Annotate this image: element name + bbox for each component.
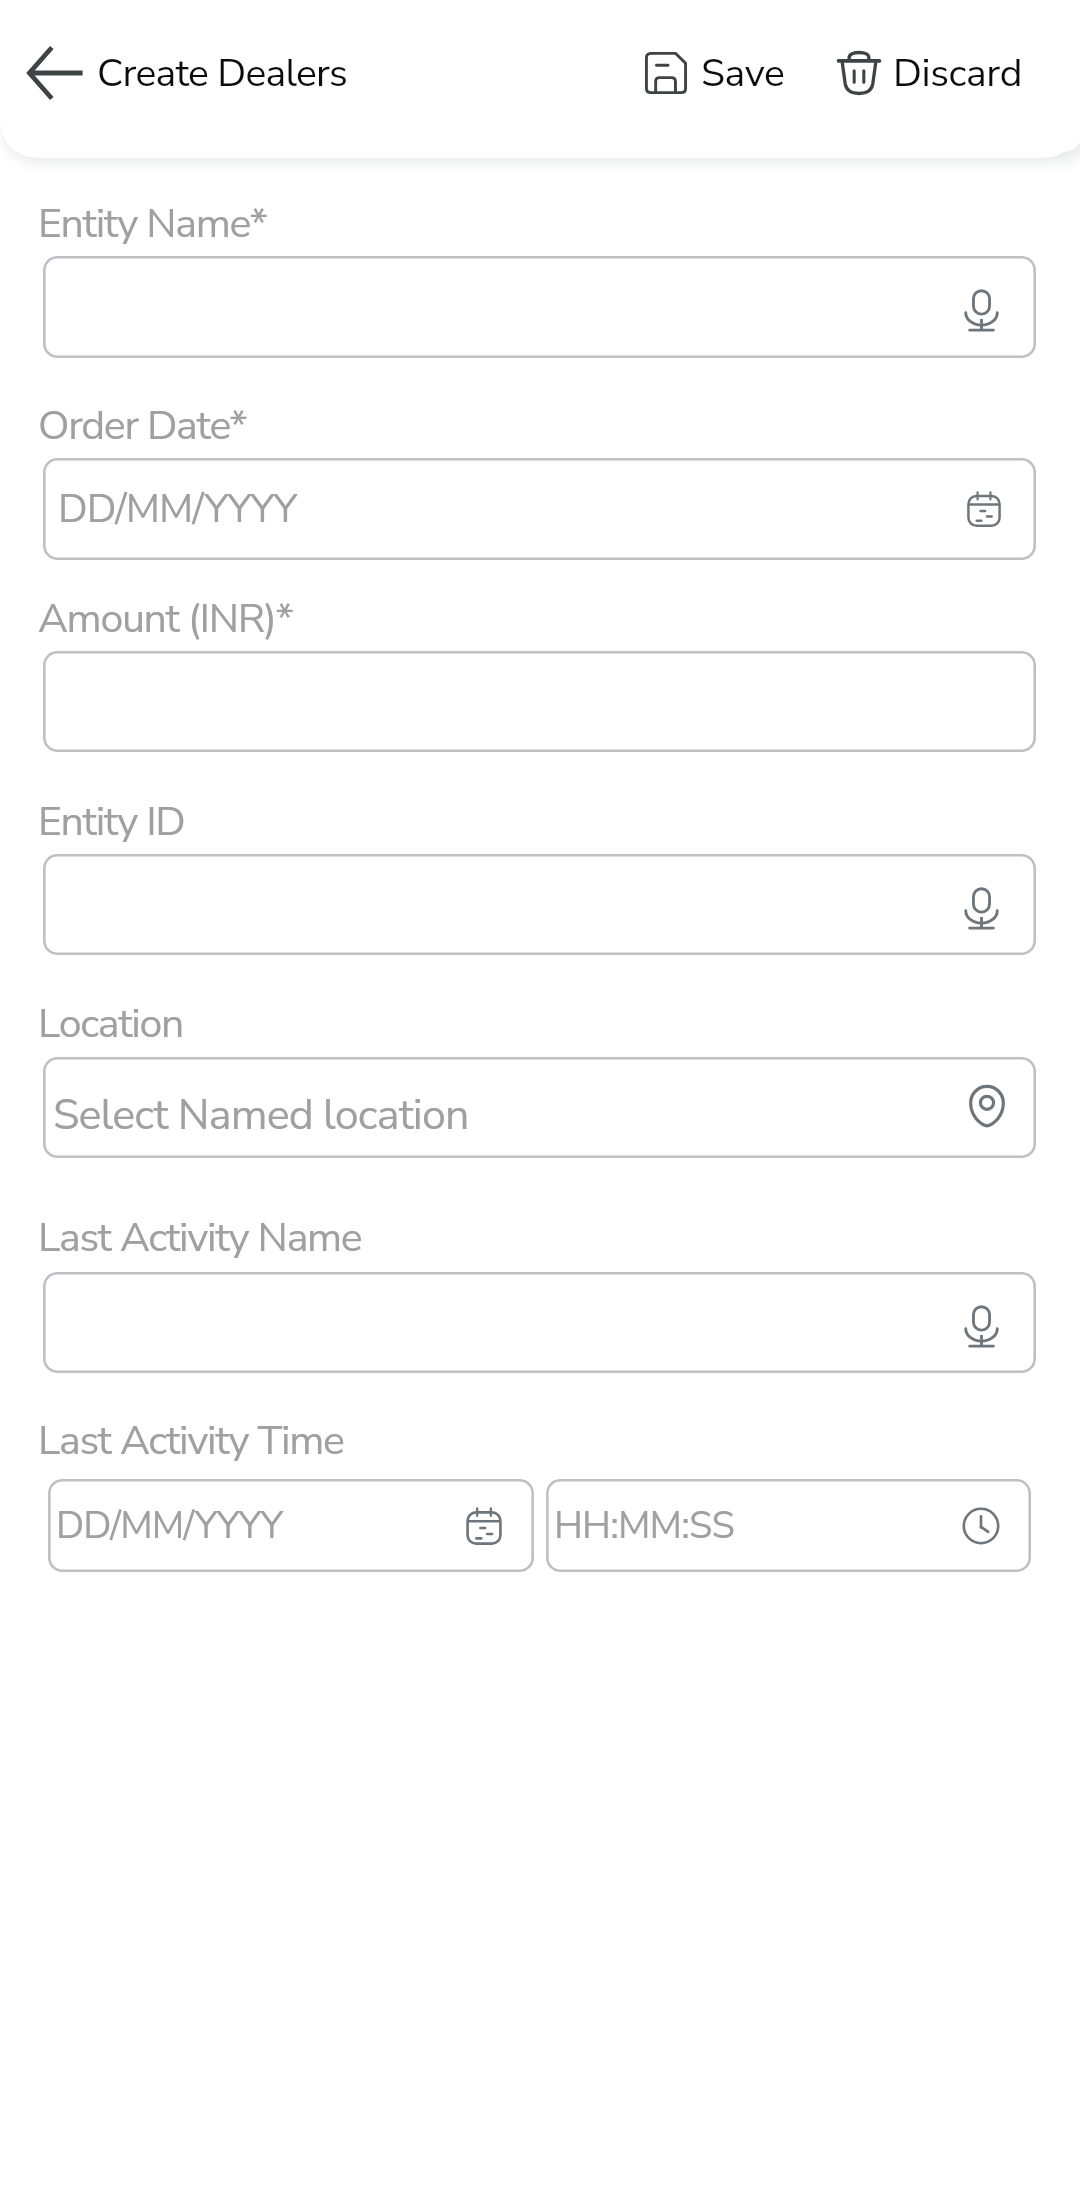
button[interactable]: Save xyxy=(636,36,793,110)
button[interactable]: Voice input xyxy=(43,1272,1036,1373)
button[interactable]: HH:MM:SS xyxy=(546,1479,1031,1572)
button[interactable]: Voice input xyxy=(43,854,1036,955)
button[interactable] xyxy=(43,651,1036,752)
staticText: Select Named location xyxy=(53,1086,469,1145)
button[interactable]: Back xyxy=(11,28,101,118)
staticText: Order Date* xyxy=(38,398,247,454)
button[interactable]: Voice input xyxy=(946,869,1017,948)
staticText: HH:MM:SS xyxy=(554,1500,735,1552)
staticText: Location xyxy=(38,996,183,1052)
staticText: Last Activity Name xyxy=(38,1210,362,1266)
button[interactable]: Pick location xyxy=(950,1068,1024,1146)
button[interactable]: Pick time xyxy=(943,1488,1019,1564)
button[interactable]: Pick date xyxy=(446,1488,522,1564)
staticText: Last Activity Time xyxy=(38,1413,344,1469)
staticText: Amount (INR)* xyxy=(38,591,293,647)
staticText: Create Dealers xyxy=(97,47,348,100)
button[interactable]: Voice input xyxy=(43,256,1036,358)
staticText: Discard xyxy=(893,47,1022,100)
button[interactable]: Voice input xyxy=(946,271,1017,350)
button[interactable]: DD/MM/YYYY xyxy=(48,1479,534,1572)
button[interactable]: Discard xyxy=(828,36,1030,110)
staticText: Entity ID xyxy=(38,794,185,850)
button[interactable]: DD/MM/YYYY xyxy=(43,458,1036,560)
staticText: DD/MM/YYYY xyxy=(56,1500,283,1552)
staticText: Entity Name* xyxy=(38,196,267,252)
staticText: Save xyxy=(701,47,785,100)
button[interactable]: Select Named location xyxy=(43,1057,1036,1158)
button[interactable]: Pick date xyxy=(947,472,1021,546)
staticText: DD/MM/YYYY xyxy=(58,482,297,537)
button[interactable]: Voice input xyxy=(946,1287,1017,1366)
